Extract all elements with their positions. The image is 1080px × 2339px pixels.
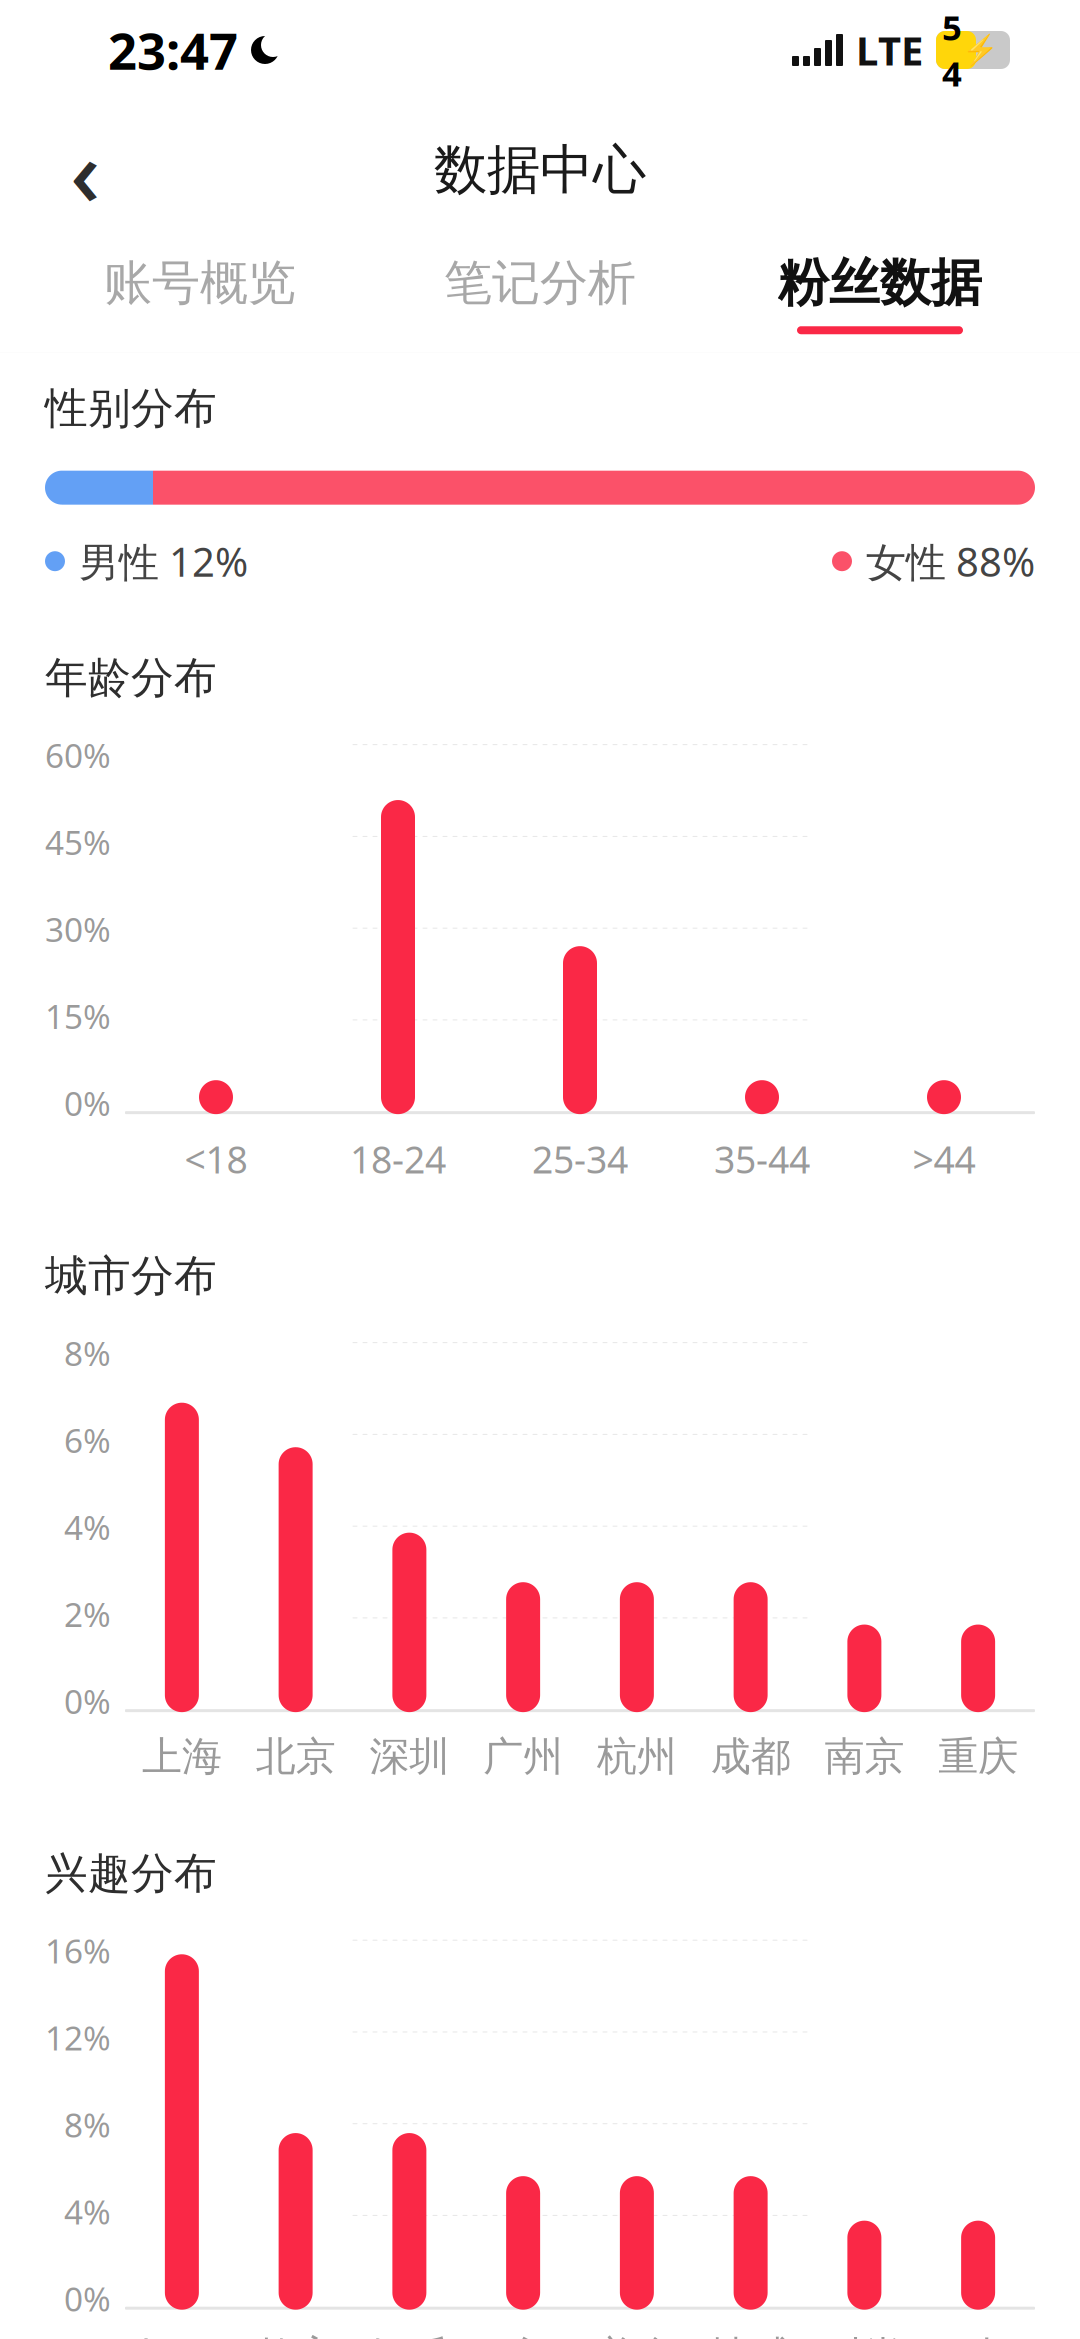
staticText: 广州 <box>483 1732 563 1781</box>
staticText: 16% <box>45 1929 111 1973</box>
staticText: 深圳 <box>369 1732 449 1781</box>
staticText: 数据中心 <box>434 137 646 203</box>
staticText: 娱乐 <box>369 2332 449 2339</box>
staticText: 城市分布 <box>45 1250 217 1302</box>
staticText: 教育 <box>256 2332 336 2339</box>
staticText: >44 <box>912 1134 975 1184</box>
staticText: 时尚 <box>824 2332 904 2339</box>
staticText: 杭州 <box>597 1732 677 1781</box>
staticText: 0% <box>64 1679 111 1723</box>
staticText: 4% <box>64 1505 111 1549</box>
staticText: 粉丝数据 <box>778 252 982 314</box>
staticText: LTE <box>856 23 923 76</box>
button[interactable]: 粉丝数据 <box>710 234 1050 352</box>
staticText: 笔记分析 <box>444 254 636 313</box>
staticText: 18-24 <box>350 1134 446 1184</box>
staticText: ‹ <box>70 108 100 232</box>
staticText: 生活... <box>125 2330 238 2339</box>
staticText: 45% <box>45 820 111 864</box>
button[interactable]: 账号概览 <box>30 236 370 351</box>
staticText: 54 <box>942 4 962 96</box>
staticText: 年龄分布 <box>45 652 217 704</box>
staticText: 35-44 <box>714 1134 810 1184</box>
staticText: 北京 <box>256 1732 336 1781</box>
staticText: 情感 <box>711 2332 791 2339</box>
button[interactable]: Back <box>40 125 130 215</box>
staticText: 8% <box>64 2103 111 2147</box>
staticText: <18 <box>184 1134 247 1184</box>
staticText: 15% <box>45 994 111 1038</box>
staticText: 25-34 <box>532 1134 628 1184</box>
staticText: ⚡ <box>962 33 999 67</box>
staticText: 美食 <box>597 2332 677 2339</box>
staticText: 2% <box>64 1592 111 1636</box>
staticText: 30% <box>45 907 111 951</box>
staticText: 0% <box>64 1081 111 1125</box>
staticText: 60% <box>45 733 111 777</box>
staticText: 南京 <box>824 1732 904 1781</box>
staticText: 4% <box>64 2190 111 2234</box>
button[interactable]: 笔记分析 <box>370 236 710 351</box>
staticText: 0% <box>64 2277 111 2321</box>
staticText: 23:47 <box>108 16 238 84</box>
staticText: 账号概览 <box>104 254 296 313</box>
staticText: 12% <box>45 2016 111 2060</box>
staticText: 兴趣分布 <box>45 1847 217 1900</box>
staticText: 女性 88% <box>866 535 1035 588</box>
staticText: 重庆 <box>938 1732 1018 1781</box>
staticText: 职场 <box>938 2332 1018 2339</box>
staticText: 性别分布 <box>45 382 217 435</box>
staticText: 体育... <box>467 2330 580 2339</box>
staticText: 男性 12% <box>79 535 248 588</box>
staticText: 成都 <box>711 1732 791 1781</box>
staticText: 上海 <box>142 1732 222 1781</box>
staticText: 8% <box>64 1331 111 1375</box>
staticText: 6% <box>64 1418 111 1462</box>
